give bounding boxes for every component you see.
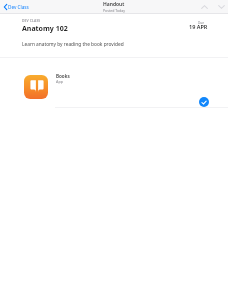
staticText: Anatomy 102 [22, 24, 68, 34]
staticText: Handout [103, 1, 125, 8]
button[interactable]: Books [0, 58, 228, 107]
staticText: Books [56, 73, 70, 79]
button[interactable]: Previous item [197, 2, 213, 12]
staticText: Due [198, 21, 205, 25]
staticText: 19 APR [189, 23, 208, 30]
staticText: Learn anatomy by reading the book provid… [22, 41, 124, 48]
button[interactable]: Dev Class [0, 2, 33, 12]
staticText: App [56, 79, 64, 84]
staticText: DEV CLASS [22, 18, 41, 23]
button[interactable]: Next item [213, 2, 228, 12]
staticText: Posted Today [103, 8, 125, 13]
staticText: Dev Class [8, 4, 29, 10]
